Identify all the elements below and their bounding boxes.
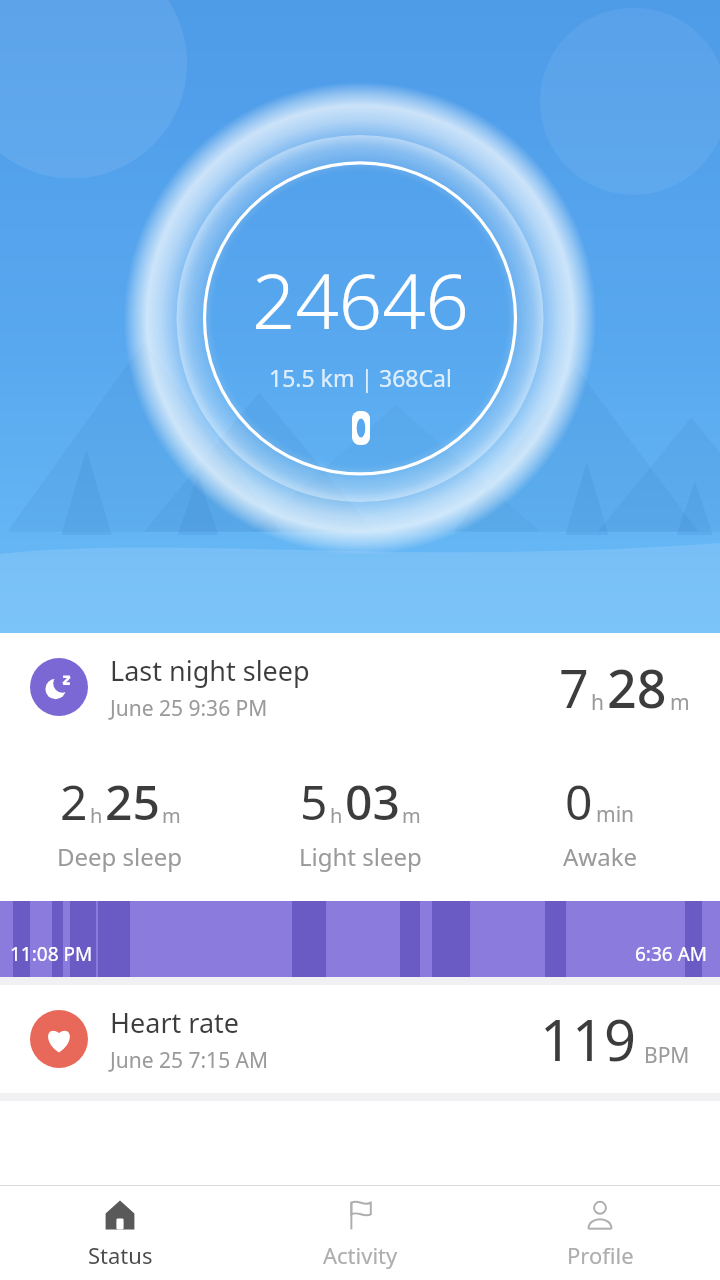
staticText: June 25 7:15 AM	[110, 1046, 269, 1075]
staticText: m	[402, 802, 421, 829]
button[interactable]: 0	[480, 769, 720, 873]
staticText: 119	[540, 1001, 637, 1077]
staticText: 2	[60, 769, 88, 834]
staticText: 03	[345, 769, 400, 834]
staticText: 15.5 km | 368Cal	[269, 362, 452, 393]
staticText: m	[670, 688, 690, 717]
staticText: 28	[607, 652, 667, 723]
staticText: 25	[105, 769, 160, 834]
staticText: Light sleep	[299, 840, 422, 873]
staticText: 24646	[252, 248, 469, 352]
staticText: h	[591, 688, 604, 717]
staticText: h	[90, 802, 103, 829]
staticText: Awake	[563, 840, 638, 873]
staticText: m	[162, 802, 181, 829]
staticText: 0	[565, 769, 593, 834]
staticText: 6:36 AM	[635, 941, 708, 967]
button[interactable]: Activity	[240, 1186, 480, 1280]
staticText: Profile	[567, 1240, 634, 1270]
staticText: June 25 9:36 PM	[110, 694, 268, 723]
button[interactable]: Last night sleep	[0, 633, 720, 741]
staticText: Deep sleep	[57, 840, 183, 873]
staticText: 11:08 PM	[10, 941, 93, 967]
staticText: h	[330, 802, 343, 829]
staticText: BPM	[644, 1041, 690, 1070]
staticText: Last night sleep	[110, 652, 310, 689]
staticText: Heart rate	[110, 1004, 240, 1041]
button[interactable]: 2	[0, 769, 240, 873]
button[interactable]: Status	[0, 1186, 240, 1280]
staticText: 5	[300, 769, 328, 834]
button[interactable]: Heart rate	[0, 985, 720, 1093]
staticText: min	[596, 800, 635, 829]
button[interactable]: 5	[240, 769, 480, 873]
staticText: 7	[559, 652, 589, 723]
button[interactable]: 11:08 PM	[0, 901, 720, 977]
button[interactable]: Profile	[480, 1186, 720, 1280]
staticText: Activity	[323, 1240, 398, 1270]
staticText: Status	[88, 1240, 153, 1270]
